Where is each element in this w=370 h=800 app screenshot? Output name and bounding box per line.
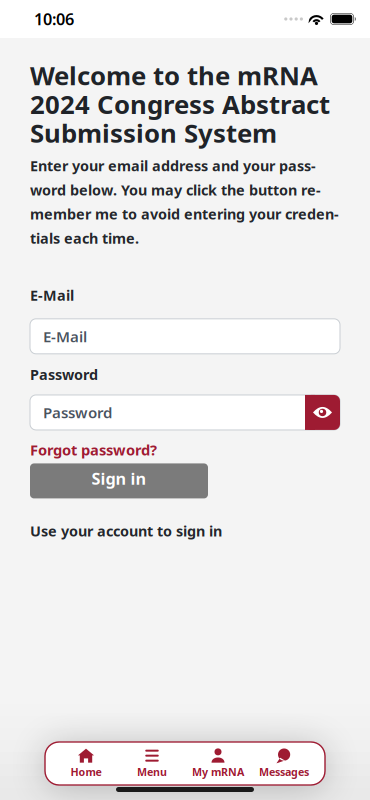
button[interactable]: Show password bbox=[305, 395, 340, 430]
staticText: E-Mail bbox=[43, 326, 87, 346]
staticText: 10:06 bbox=[34, 8, 74, 30]
button[interactable]: Sign in bbox=[30, 463, 208, 498]
staticText: E-Mail bbox=[30, 286, 74, 305]
staticText: Sign in bbox=[91, 468, 146, 489]
staticText: Welcome to the mRNA 2024 Congress Abstra… bbox=[30, 61, 330, 147]
button[interactable]: Menu bbox=[119, 743, 185, 783]
button[interactable]: Messages bbox=[251, 743, 317, 783]
staticText: Messages bbox=[259, 765, 309, 779]
staticText: Use your account to sign in bbox=[30, 521, 222, 540]
button[interactable]: Home bbox=[53, 743, 119, 783]
button[interactable]: E-Mail bbox=[30, 319, 340, 354]
staticText: Forgot password? bbox=[30, 440, 157, 459]
staticText: Menu bbox=[137, 765, 167, 779]
staticText: Enter your email address and your pass- … bbox=[30, 156, 339, 248]
staticText: Password bbox=[43, 402, 112, 422]
button[interactable]: Forgot password? bbox=[30, 440, 157, 459]
staticText: Home bbox=[70, 765, 101, 779]
staticText: Password bbox=[30, 365, 98, 384]
button[interactable]: Password bbox=[30, 395, 340, 430]
staticText: My mRNA bbox=[192, 765, 244, 779]
button[interactable]: My mRNA bbox=[185, 743, 251, 783]
